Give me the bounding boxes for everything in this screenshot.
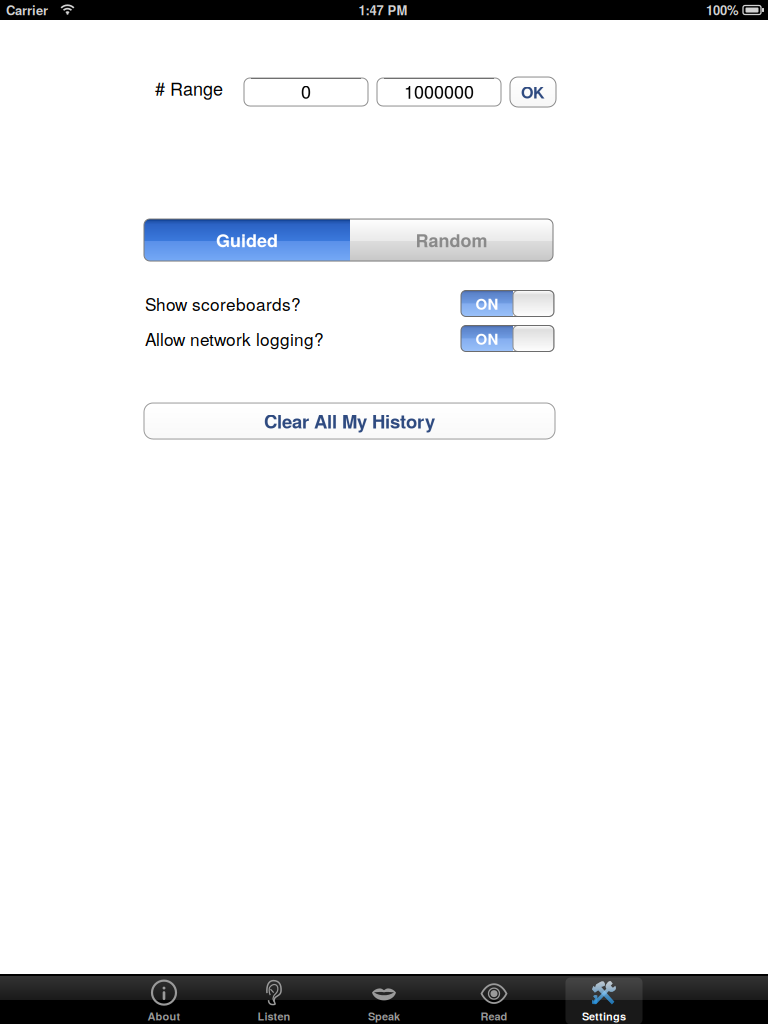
staticText: Random bbox=[415, 227, 487, 253]
staticText: 0 bbox=[301, 78, 311, 104]
staticText: Listen bbox=[257, 1008, 290, 1024]
staticText: 1:47 PM bbox=[358, 1, 407, 19]
button[interactable]: Read bbox=[439, 974, 549, 1024]
button[interactable]: Guided bbox=[144, 219, 350, 261]
button[interactable]: ON bbox=[461, 325, 554, 351]
button[interactable]: Listen bbox=[219, 974, 329, 1024]
staticText: 100% bbox=[706, 1, 739, 19]
staticText: OK bbox=[521, 80, 545, 103]
staticText: About bbox=[147, 1008, 180, 1024]
staticText: Allow network logging? bbox=[145, 326, 324, 351]
staticText: Speak bbox=[368, 1008, 400, 1024]
staticText: Read bbox=[480, 1008, 507, 1024]
button[interactable]: Random bbox=[350, 219, 553, 261]
staticText: 1000000 bbox=[404, 78, 474, 104]
button[interactable]: Speak bbox=[329, 974, 439, 1024]
staticText: Carrier bbox=[6, 1, 48, 19]
staticText: ON bbox=[475, 328, 498, 349]
staticText: # Range bbox=[155, 75, 223, 101]
staticText: ON bbox=[475, 293, 498, 314]
button[interactable]: About bbox=[109, 974, 219, 1024]
staticText: Settings bbox=[582, 1008, 626, 1024]
button[interactable]: ON bbox=[461, 290, 554, 316]
button[interactable]: Settings bbox=[549, 974, 659, 1024]
staticText: Guided bbox=[216, 227, 278, 253]
staticText: Clear All My History bbox=[264, 408, 435, 434]
button[interactable]: OK bbox=[510, 77, 556, 107]
staticText: Show scoreboards? bbox=[145, 291, 301, 316]
button[interactable]: Clear All My History bbox=[144, 403, 555, 439]
